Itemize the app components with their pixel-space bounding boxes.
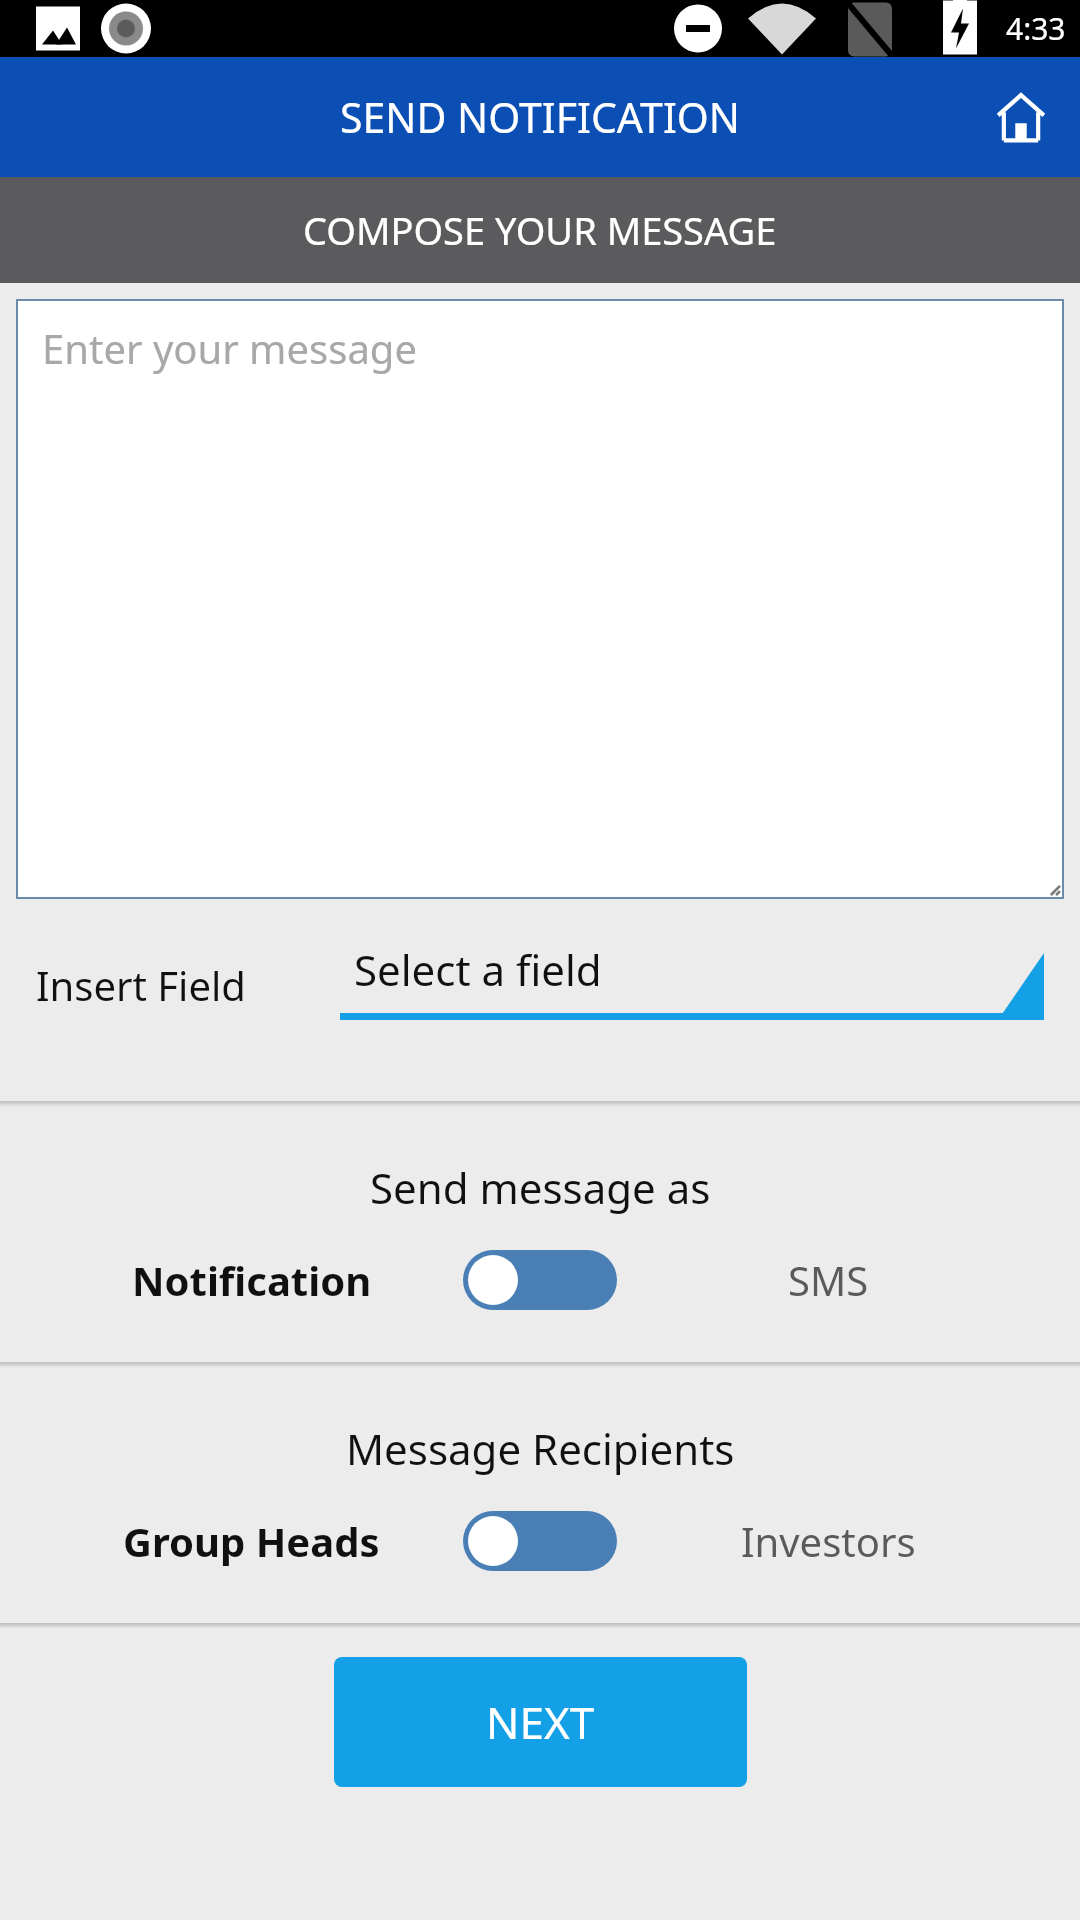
button[interactable]: NEXT: [334, 1657, 747, 1787]
button[interactable]: Home: [982, 78, 1060, 156]
staticText: SMS: [788, 1253, 869, 1307]
staticText: Message Recipients: [346, 1420, 735, 1477]
button[interactable]: Enter your message: [16, 299, 1064, 899]
staticText: Send message as: [370, 1159, 711, 1216]
staticText: Notification: [132, 1253, 372, 1307]
staticText: NEXT: [486, 1692, 595, 1752]
staticText: Group Heads: [123, 1514, 380, 1568]
staticText: COMPOSE YOUR MESSAGE: [303, 204, 777, 256]
staticText: Insert Field: [36, 958, 246, 1012]
button[interactable]: Toggle Group Heads / Investors: [463, 1511, 617, 1571]
button[interactable]: Toggle Notification / SMS: [463, 1250, 617, 1310]
staticText: Enter your message: [42, 321, 417, 375]
staticText: 4:33: [1006, 8, 1066, 49]
staticText: SEND NOTIFICATION: [340, 89, 740, 145]
button[interactable]: Select a field: [340, 939, 1044, 1031]
staticText: Investors: [741, 1514, 916, 1568]
staticText: Select a field: [354, 941, 602, 998]
